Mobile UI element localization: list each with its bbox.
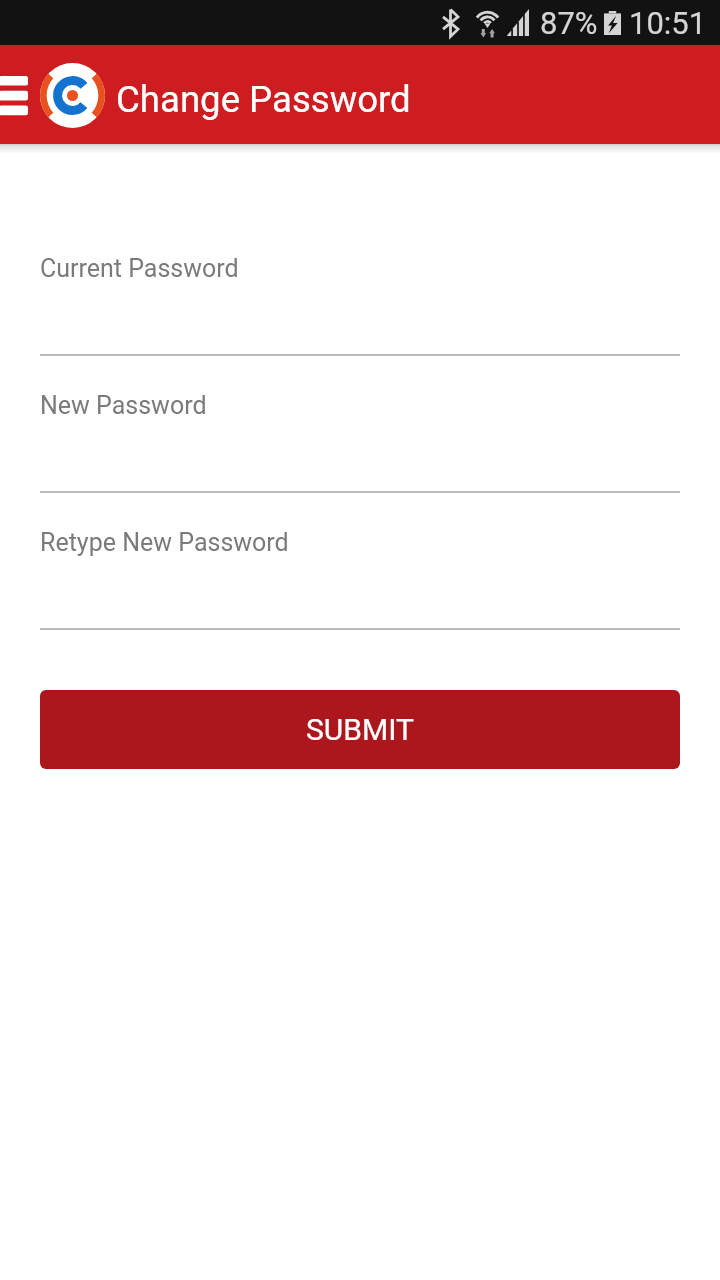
staticText: Change Password xyxy=(116,78,411,121)
staticText: SUBMIT xyxy=(306,712,414,747)
button[interactable]: SUBMIT xyxy=(40,690,680,769)
staticText: 87% xyxy=(540,5,598,41)
staticText: New Password xyxy=(40,391,207,420)
staticText: Retype New Password xyxy=(40,528,289,557)
button[interactable]: Open navigation menu xyxy=(0,45,40,144)
button[interactable]: Current Password xyxy=(0,254,720,356)
staticText: Current Password xyxy=(40,254,239,283)
staticText: 10:51 xyxy=(629,5,707,41)
button[interactable]: New Password xyxy=(0,391,720,493)
button[interactable]: Retype New Password xyxy=(0,528,720,630)
